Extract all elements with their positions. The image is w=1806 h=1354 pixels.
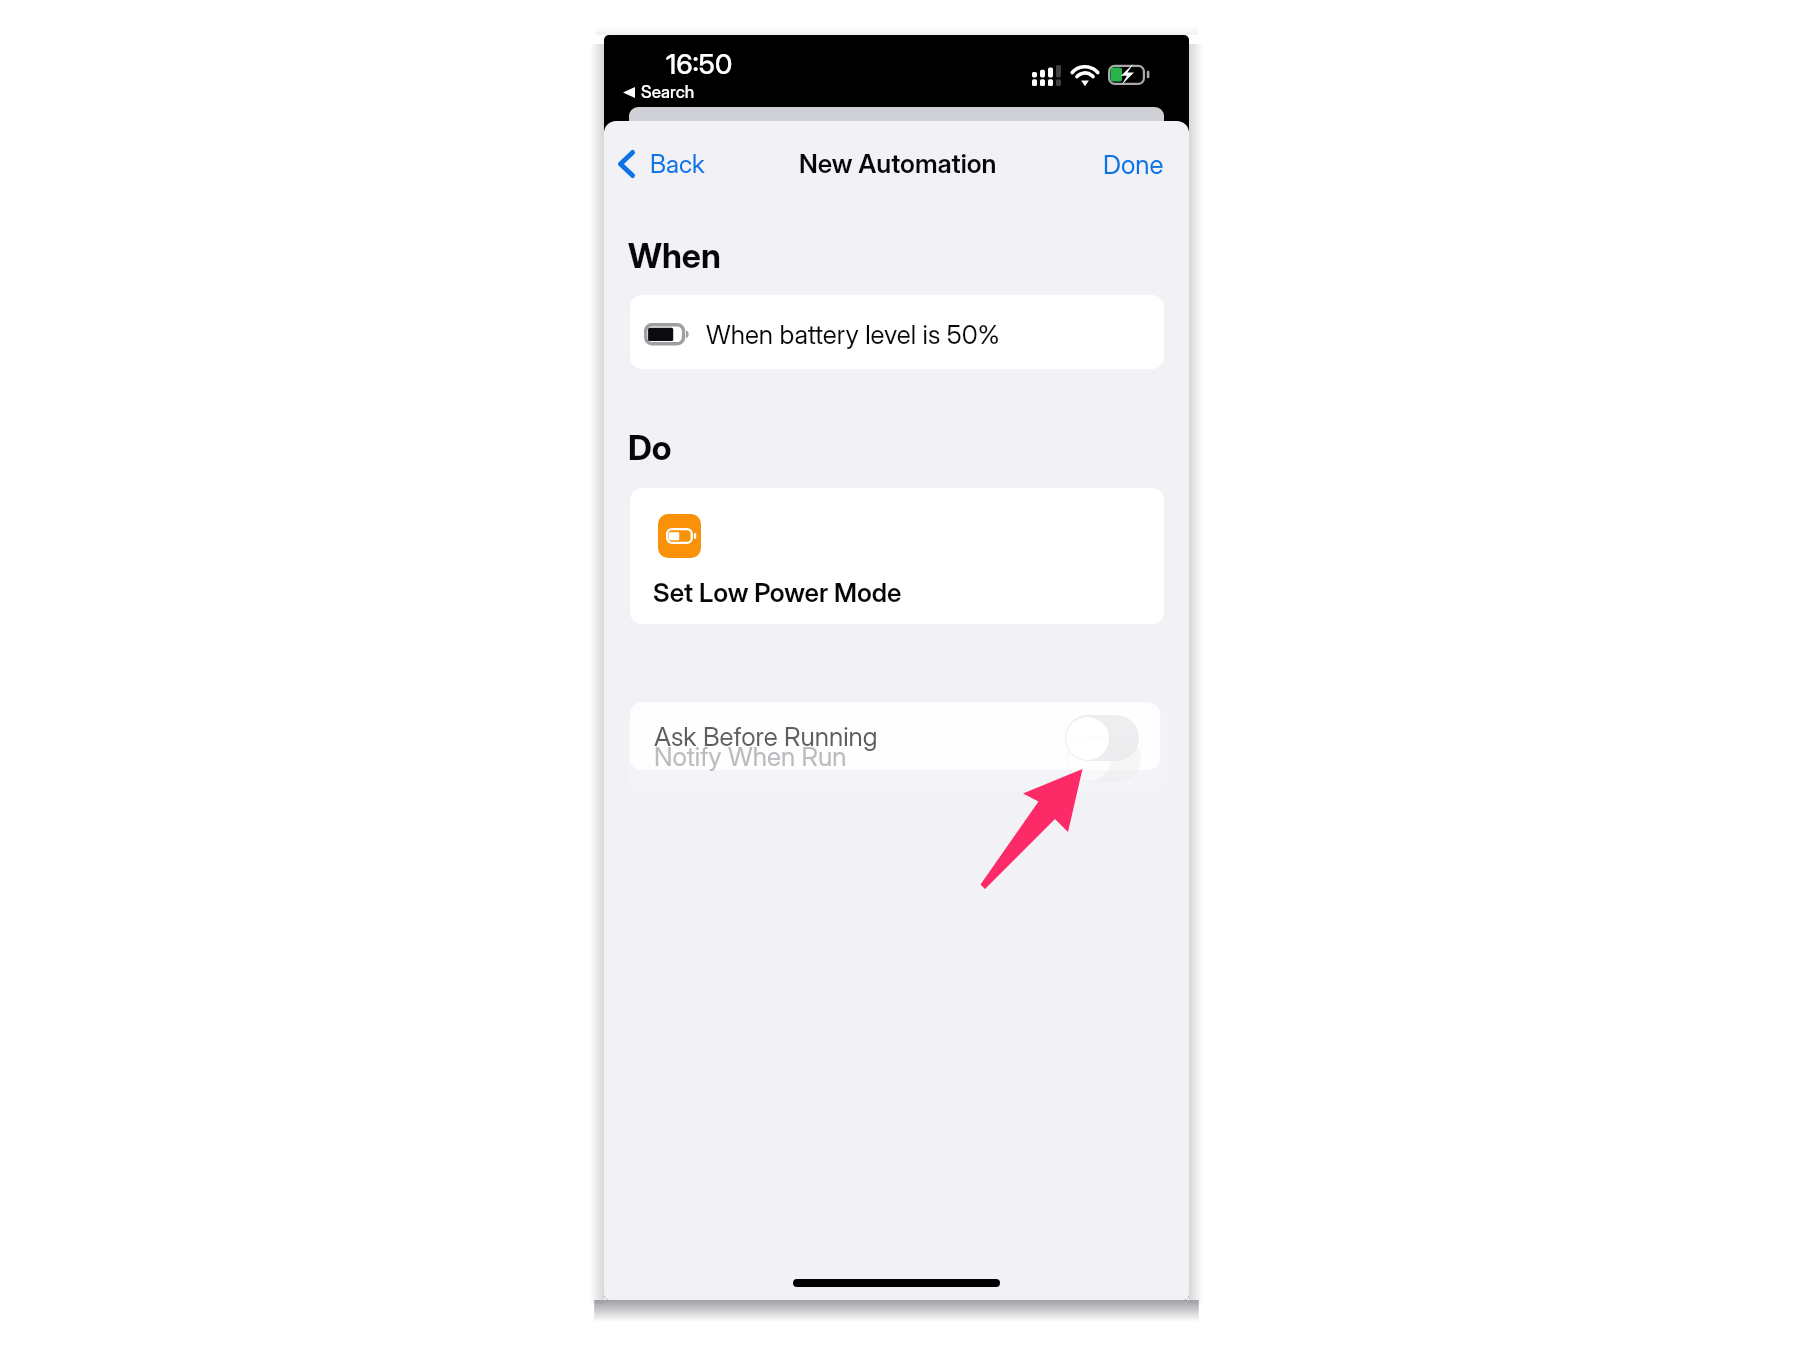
- button[interactable]: When battery level is 50%: [630, 295, 1164, 369]
- staticText: When battery level is 50%: [706, 319, 1000, 350]
- staticText: 16:50: [666, 47, 733, 80]
- staticText: When: [628, 235, 721, 276]
- button[interactable]: Done: [1097, 142, 1170, 187]
- staticText: Ask Before Running: [654, 721, 878, 752]
- staticText: New Automation: [799, 148, 997, 179]
- button[interactable]: Ask Before Running: [630, 702, 1160, 770]
- button[interactable]: Notify When Run toggle: [1067, 736, 1141, 782]
- button[interactable]: Back: [612, 142, 711, 186]
- button[interactable]: Ask Before Running toggle: [1065, 715, 1139, 761]
- staticText: Set Low Power Mode: [653, 577, 902, 608]
- staticText: Notify When Run: [654, 741, 847, 772]
- button[interactable]: Set Low Power Mode: [630, 488, 1164, 624]
- staticText: Search: [641, 82, 695, 103]
- staticText: Do: [628, 427, 672, 468]
- staticText: Back: [650, 149, 705, 179]
